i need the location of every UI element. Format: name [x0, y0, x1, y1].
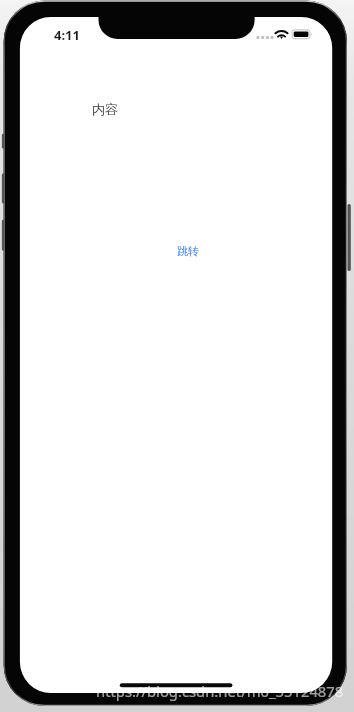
- button[interactable]: 跳转: [177, 244, 199, 258]
- staticText: 4:11: [54, 26, 80, 44]
- staticText: 跳转: [177, 244, 199, 258]
- staticText: https://blog.csdn.net/m0_55124878: [96, 681, 344, 701]
- staticText: 内容: [92, 101, 118, 117]
